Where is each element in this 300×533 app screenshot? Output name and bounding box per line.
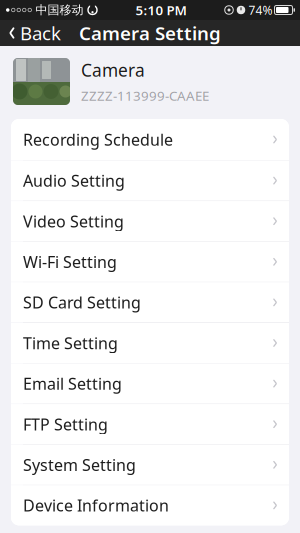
staticText: Camera xyxy=(81,59,145,82)
button[interactable]: FTP Setting xyxy=(11,404,289,445)
staticText: Recording Schedule xyxy=(23,129,173,150)
staticText: Wi-Fi Setting xyxy=(23,251,117,272)
button[interactable]: Back xyxy=(0,20,69,46)
staticText: FTP Setting xyxy=(23,414,108,435)
button[interactable]: SD Card Setting xyxy=(11,282,289,323)
button[interactable]: Wi-Fi Setting xyxy=(11,242,289,282)
staticText: Audio Setting xyxy=(23,170,125,191)
staticText: 5:10 PM xyxy=(135,1,186,19)
staticText: System Setting xyxy=(23,454,136,475)
staticText: Camera Setting xyxy=(79,21,221,45)
staticText: Time Setting xyxy=(23,332,118,354)
button[interactable]: Video Setting xyxy=(11,201,289,242)
staticText: Device Information xyxy=(23,495,169,516)
staticText: Back xyxy=(20,21,61,45)
staticText: 74% xyxy=(248,2,272,18)
staticText: Email Setting xyxy=(23,373,122,394)
button[interactable]: Audio Setting xyxy=(11,161,289,201)
staticText: ZZZZ-113999-CAAEE xyxy=(81,87,209,104)
button[interactable]: Time Setting xyxy=(11,323,289,364)
button[interactable]: Device Information xyxy=(11,485,289,525)
button[interactable]: Recording Schedule xyxy=(11,119,289,161)
button[interactable]: System Setting xyxy=(11,445,289,485)
staticText: Video Setting xyxy=(23,211,124,232)
staticText: 中国移动 xyxy=(35,3,83,17)
staticText: SD Card Setting xyxy=(23,292,141,313)
button[interactable]: Email Setting xyxy=(11,364,289,404)
